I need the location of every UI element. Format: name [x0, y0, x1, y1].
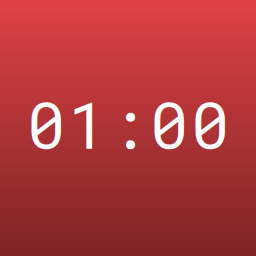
staticText: 01:00 — [27, 82, 229, 166]
button[interactable]: 01:00 — [0, 0, 256, 252]
